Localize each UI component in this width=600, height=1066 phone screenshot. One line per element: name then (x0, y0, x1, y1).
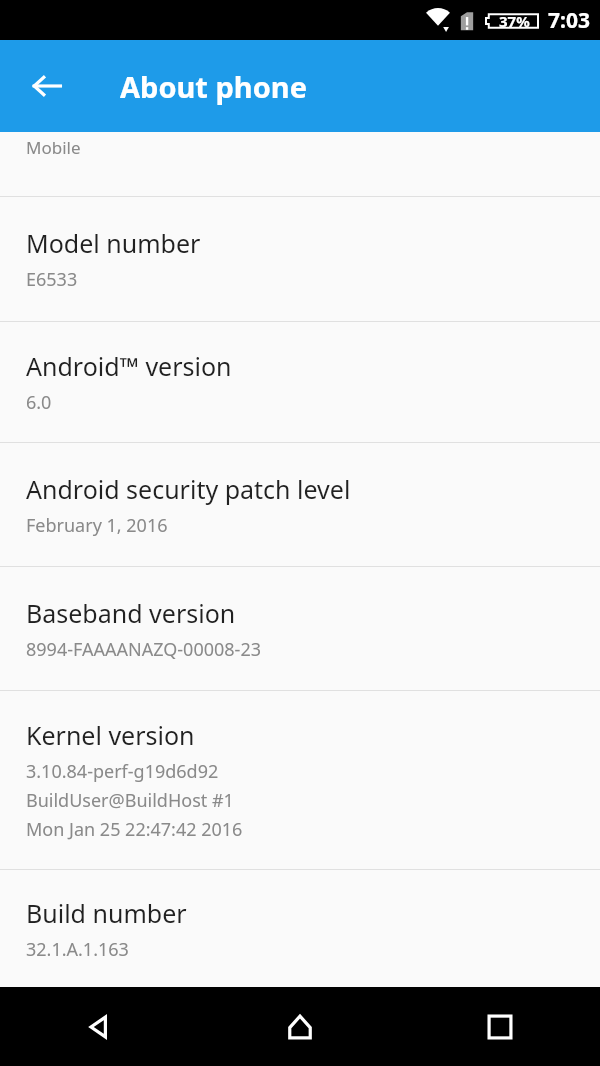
button[interactable]: Back (0, 987, 200, 1066)
staticText: 32.1.A.1.163 (26, 937, 129, 962)
button[interactable]: Android security patch level (0, 443, 600, 566)
staticText: Baseband version (26, 596, 236, 630)
button[interactable]: Android™ version (0, 322, 600, 442)
staticText: About phone (120, 67, 307, 106)
button[interactable]: Kernel version (0, 691, 600, 869)
staticText: BuildUser@BuildHost #1 (26, 788, 234, 813)
button[interactable]: Recent apps (400, 987, 600, 1066)
staticText: 8994-FAAAANAZQ-00008-23 (26, 637, 261, 662)
staticText: 6.0 (26, 390, 52, 415)
button[interactable]: Home (200, 987, 400, 1066)
staticText: Mon Jan 25 22:47:42 2016 (26, 817, 243, 842)
staticText: Android security patch level (26, 472, 351, 506)
button[interactable]: Build number (0, 870, 600, 987)
staticText: 37% (499, 11, 530, 31)
button[interactable]: Back (11, 50, 83, 122)
staticText: Build number (26, 896, 187, 930)
staticText: Android™ version (26, 349, 232, 383)
button[interactable]: Model number (0, 197, 600, 321)
staticText: 3.10.84-perf-g19d6d92 (26, 759, 219, 784)
button[interactable]: Send anonymous data and usage statistics… (0, 132, 600, 196)
staticText: Kernel version (26, 718, 195, 752)
button[interactable]: Baseband version (0, 567, 600, 690)
staticText: February 1, 2016 (26, 513, 168, 538)
staticText: Mobile (26, 136, 81, 159)
staticText: 7:03 (548, 6, 590, 35)
staticText: Model number (26, 226, 201, 260)
staticText: E6533 (26, 267, 78, 292)
